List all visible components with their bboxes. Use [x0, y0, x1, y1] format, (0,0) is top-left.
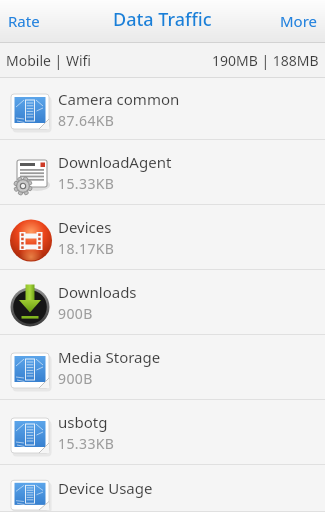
staticText: 900B	[58, 304, 93, 323]
staticText: 900B	[58, 369, 93, 388]
staticText: 87.64KB	[58, 111, 115, 130]
button[interactable]: DownloadAgent	[0, 140, 325, 205]
button[interactable]: Camera common	[0, 78, 325, 140]
staticText: Devices	[58, 217, 112, 237]
button[interactable]: Data Traffic	[113, 0, 212, 32]
staticText: More	[280, 11, 318, 31]
button[interactable]: usbotg	[0, 400, 325, 465]
staticText: Rate	[8, 11, 40, 31]
staticText: 18.17KB	[58, 239, 115, 258]
button[interactable]: More	[268, 0, 325, 39]
staticText: Downloads	[58, 282, 137, 302]
staticText: 190MB | 188MB	[212, 51, 319, 70]
staticText: DownloadAgent	[58, 152, 172, 172]
button[interactable]: Media Storage	[0, 335, 325, 400]
button[interactable]: Downloads	[0, 270, 325, 335]
staticText: 15.33KB	[58, 434, 115, 453]
staticText: Data Traffic	[113, 7, 212, 32]
staticText: 15.33KB	[58, 174, 115, 193]
staticText: Media Storage	[58, 347, 161, 367]
button[interactable]: Rate	[0, 0, 52, 39]
button[interactable]: Device Usage	[0, 465, 325, 512]
staticText: Device Usage	[58, 478, 153, 498]
staticText: Mobile | Wifi	[6, 51, 91, 70]
staticText: Camera common	[58, 89, 180, 109]
staticText: usbotg	[58, 412, 108, 432]
button[interactable]: Devices	[0, 205, 325, 270]
